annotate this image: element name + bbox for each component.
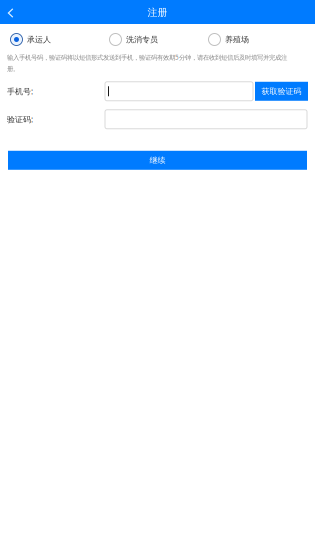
staticText: 洗消专员	[126, 34, 158, 45]
staticText: 承运人	[27, 34, 51, 45]
staticText: 获取验证码	[261, 86, 301, 96]
staticText: 验证码:	[7, 114, 33, 125]
staticText: 继续	[149, 155, 165, 165]
button[interactable]: 养殖场	[208, 33, 249, 46]
button[interactable]: 继续	[8, 151, 307, 170]
staticText: 手机号:	[7, 86, 33, 97]
button[interactable]: Back	[2, 0, 19, 24]
staticText: 养殖场	[225, 34, 249, 45]
button[interactable]: 验证码:	[105, 110, 307, 129]
button[interactable]: 洗消专员	[109, 33, 158, 46]
staticText: 输入手机号码，验证码将以短信形式发送到手机，验证码有效期5分钟，请在收到短信后及…	[7, 53, 287, 73]
staticText: 注册	[147, 6, 167, 19]
button[interactable]: 获取验证码	[255, 82, 308, 101]
button[interactable]: 承运人	[10, 33, 51, 46]
button[interactable]: 手机号:	[105, 82, 253, 101]
